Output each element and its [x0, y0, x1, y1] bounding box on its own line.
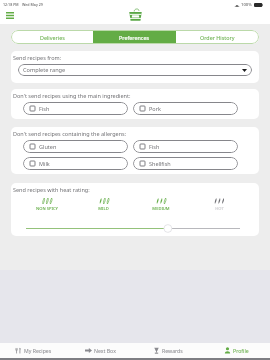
- staticText: Deliveries: [40, 34, 65, 41]
- staticText: Don't send recipes using the main ingred…: [13, 92, 131, 99]
- staticText: Preferences: [119, 34, 150, 41]
- button[interactable]: Deliveries: [11, 30, 93, 44]
- staticText: 100%: [241, 2, 252, 8]
- button[interactable]: Shellfish: [133, 157, 238, 170]
- button[interactable]: Gluten: [23, 140, 128, 153]
- button[interactable]: Rewards: [134, 343, 202, 358]
- button[interactable]: Profile: [202, 343, 270, 358]
- staticText: Milk: [39, 160, 50, 167]
- button[interactable]: MILD: [75, 198, 132, 212]
- button[interactable]: Pork: [133, 102, 238, 115]
- staticText: Rewards: [162, 347, 183, 354]
- button[interactable]: Menu: [4, 9, 16, 21]
- staticText: Profile: [233, 347, 249, 354]
- staticText: Order History: [200, 34, 235, 41]
- staticText: Shellfish: [149, 160, 171, 167]
- staticText: Send recipes from:: [13, 54, 62, 61]
- staticText: MILD: [98, 206, 109, 212]
- button[interactable]: Next Box: [67, 343, 134, 358]
- staticText: 12:18 PM: [3, 2, 19, 7]
- staticText: Gluten: [39, 143, 57, 150]
- staticText: Don't send recipes containing the allerg…: [13, 130, 127, 137]
- staticText: Pork: [149, 105, 161, 112]
- button[interactable]: My Recipes: [0, 343, 67, 358]
- button[interactable]: Preferences: [93, 30, 176, 44]
- button[interactable]: Fish: [23, 102, 128, 115]
- staticText: HOT: [215, 206, 224, 212]
- staticText: Next Box: [94, 347, 116, 354]
- button[interactable]: MEDIUM: [132, 198, 190, 212]
- staticText: My Recipes: [24, 347, 52, 354]
- staticText: Send recipes with heat rating:: [13, 186, 90, 193]
- button[interactable]: Home: [129, 8, 142, 21]
- staticText: Wed May 29: [22, 2, 43, 7]
- button[interactable]: Order History: [176, 30, 259, 44]
- staticText: NON SPICY: [36, 206, 58, 212]
- button[interactable]: Milk: [23, 157, 128, 170]
- button[interactable]: Fish: [133, 140, 238, 153]
- button[interactable]: HOT: [190, 198, 248, 212]
- staticText: Complete range: [23, 66, 66, 74]
- staticText: MEDIUM: [152, 206, 170, 212]
- staticText: Fish: [39, 105, 50, 112]
- staticText: Fish: [149, 143, 160, 150]
- button[interactable]: NON SPICY: [18, 198, 75, 212]
- button[interactable]: Complete range: [18, 64, 252, 76]
